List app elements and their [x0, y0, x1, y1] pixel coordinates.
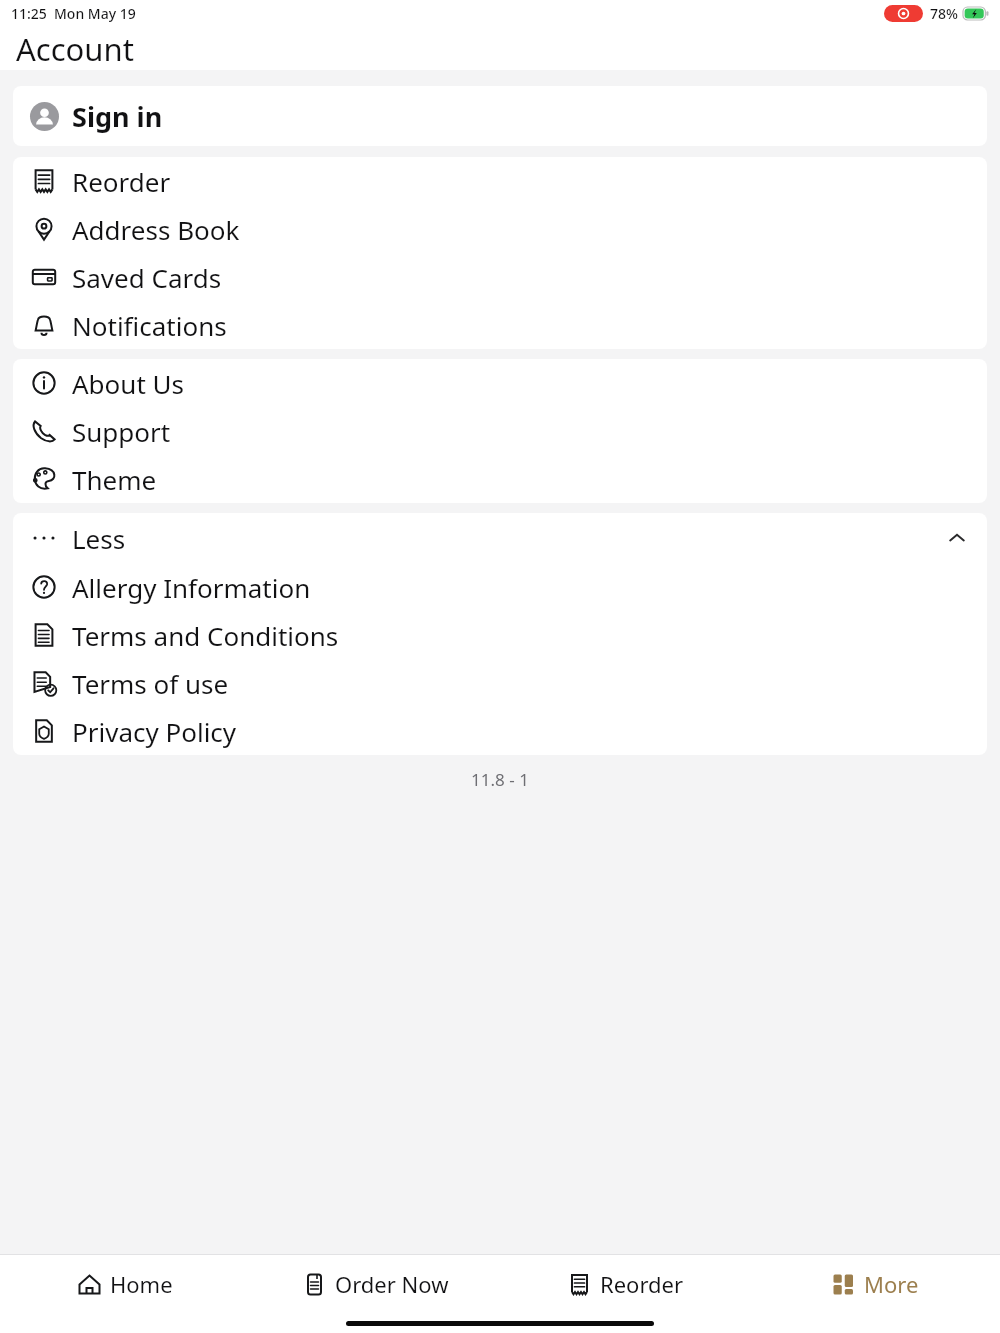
button[interactable]: Reorder [13, 157, 987, 205]
staticText: Home [110, 1269, 173, 1299]
staticText: Saved Cards [72, 260, 222, 295]
button[interactable]: Saved Cards [13, 253, 987, 301]
staticText: Order Now [335, 1269, 449, 1299]
button[interactable]: Terms and Conditions [13, 611, 987, 659]
button[interactable]: Less [13, 513, 987, 563]
staticText: 11:25 [11, 4, 47, 23]
staticText: More [864, 1269, 919, 1299]
button[interactable]: Theme [13, 455, 987, 503]
button[interactable]: Terms of use [13, 659, 987, 707]
staticText: Terms of use [72, 666, 229, 701]
staticText: Allergy Information [72, 570, 311, 605]
staticText: 11.8 - 1 [471, 768, 529, 791]
button[interactable]: Sign in [13, 86, 987, 146]
button[interactable]: Home [0, 1255, 250, 1313]
staticText: Sign in [72, 98, 163, 135]
staticText: 78% [930, 4, 958, 23]
button[interactable]: Support [13, 407, 987, 455]
staticText: Privacy Policy [72, 714, 237, 749]
staticText: Less [72, 521, 126, 556]
staticText: Mon May 19 [54, 4, 136, 23]
button[interactable]: Address Book [13, 205, 987, 253]
staticText: Address Book [72, 212, 240, 247]
button[interactable]: Reorder [500, 1255, 750, 1313]
button[interactable]: Privacy Policy [13, 707, 987, 755]
staticText: Terms and Conditions [72, 618, 339, 653]
staticText: Support [72, 414, 171, 449]
staticText: Notifications [72, 308, 227, 343]
staticText: Account [16, 28, 134, 70]
button[interactable]: More [750, 1255, 1000, 1313]
staticText: Theme [72, 462, 157, 497]
button[interactable]: Notifications [13, 301, 987, 349]
staticText: Reorder [600, 1269, 684, 1299]
button[interactable]: About Us [13, 359, 987, 407]
button[interactable]: Allergy Information [13, 563, 987, 611]
staticText: Reorder [72, 164, 171, 199]
staticText: About Us [72, 366, 185, 401]
button[interactable]: Order Now [250, 1255, 500, 1313]
